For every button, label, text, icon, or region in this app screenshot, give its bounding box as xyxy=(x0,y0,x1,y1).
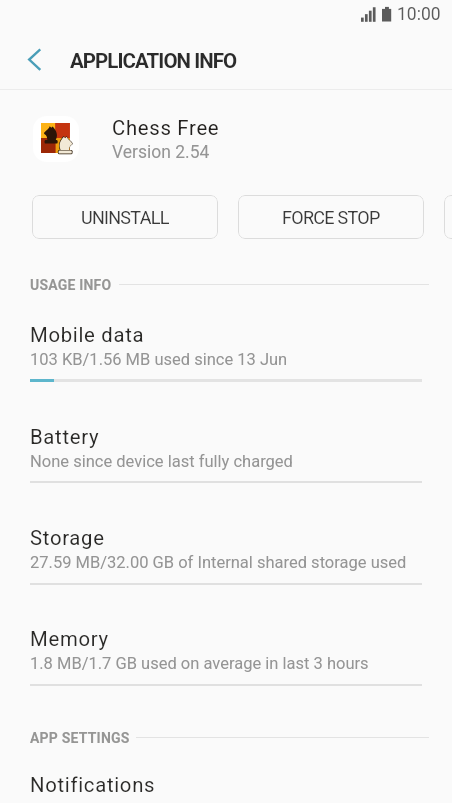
button[interactable] xyxy=(0,311,452,381)
button[interactable] xyxy=(0,413,452,483)
staticText: Version 2.54 xyxy=(112,142,210,163)
staticText: Chess Free xyxy=(112,116,220,140)
staticText: Mobile data xyxy=(30,323,145,347)
button[interactable]: UNINSTALL xyxy=(32,195,218,239)
button[interactable]: Back xyxy=(10,36,58,84)
staticText: None since device last fully charged xyxy=(30,452,293,471)
button[interactable]: FORCE STOP xyxy=(238,195,424,239)
staticText: Battery xyxy=(30,425,100,449)
button[interactable] xyxy=(0,615,452,686)
staticText: USAGE INFO xyxy=(30,277,112,293)
staticText: 10:00 xyxy=(397,4,441,25)
staticText: Storage xyxy=(30,526,105,550)
staticText: 27.59 MB/32.00 GB of Internal shared sto… xyxy=(30,553,407,572)
staticText: 103 KB/1.56 MB used since 13 Jun xyxy=(30,350,288,369)
staticText: UNINSTALL xyxy=(81,207,169,228)
button[interactable]: Notifications xyxy=(0,768,452,803)
staticText: APP SETTINGS xyxy=(30,730,130,746)
button[interactable] xyxy=(444,195,452,239)
staticText: FORCE STOP xyxy=(282,207,380,228)
staticText: 1.8 MB/1.7 GB used on average in last 3 … xyxy=(30,654,369,673)
button[interactable] xyxy=(0,514,452,585)
staticText: Memory xyxy=(30,627,109,651)
staticText: Notifications xyxy=(30,773,156,797)
staticText: APPLICATION INFO xyxy=(70,49,237,73)
